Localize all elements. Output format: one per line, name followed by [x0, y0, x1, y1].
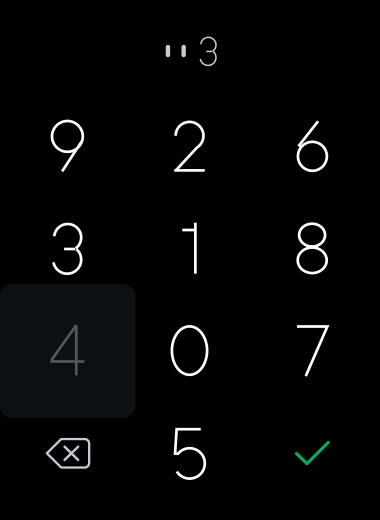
button[interactable]: 5 [128, 402, 250, 504]
button[interactable]: 1 [128, 197, 250, 299]
button[interactable]: 2 [128, 95, 250, 197]
button[interactable]: 9 [6, 95, 128, 197]
button[interactable]: 4 [6, 300, 128, 402]
button[interactable]: 8 [251, 197, 373, 299]
button[interactable]: Delete [7, 402, 129, 504]
button[interactable]: 6 [251, 95, 373, 197]
button[interactable]: Confirm [251, 402, 373, 504]
button[interactable]: 0 [128, 300, 250, 402]
button[interactable]: 7 [251, 300, 373, 402]
button[interactable]: 3 [6, 197, 128, 299]
